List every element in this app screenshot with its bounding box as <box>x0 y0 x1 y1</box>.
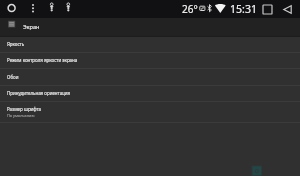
staticText: Режим контроля яркости экрана <box>7 57 78 63</box>
button[interactable]: Assistant <box>5 2 19 16</box>
button[interactable]: Яркость <box>0 37 300 53</box>
staticText: Яркость <box>7 41 25 47</box>
button[interactable]: Screenshot <box>46 2 58 16</box>
button[interactable]: Принудительная ориентация <box>0 86 300 102</box>
staticText: Экран <box>23 23 40 31</box>
button[interactable]: Back <box>280 2 295 16</box>
button[interactable]: Recents <box>260 2 275 16</box>
button[interactable]: Menu <box>1 18 20 37</box>
staticText: Обои <box>7 74 19 80</box>
button[interactable]: More options <box>27 2 39 16</box>
staticText: Принудительная ориентация <box>7 90 71 96</box>
button[interactable]: Режим контроля яркости экрана <box>0 53 300 69</box>
staticText: 15:31 <box>230 2 258 16</box>
button[interactable]: Обои <box>0 69 300 86</box>
staticText: По умолчанию <box>7 113 35 118</box>
button[interactable]: Размер шрифта <box>0 102 300 123</box>
staticText: 26° <box>182 2 198 16</box>
staticText: Размер шрифта <box>7 106 42 112</box>
button[interactable]: Volume <box>62 2 74 16</box>
